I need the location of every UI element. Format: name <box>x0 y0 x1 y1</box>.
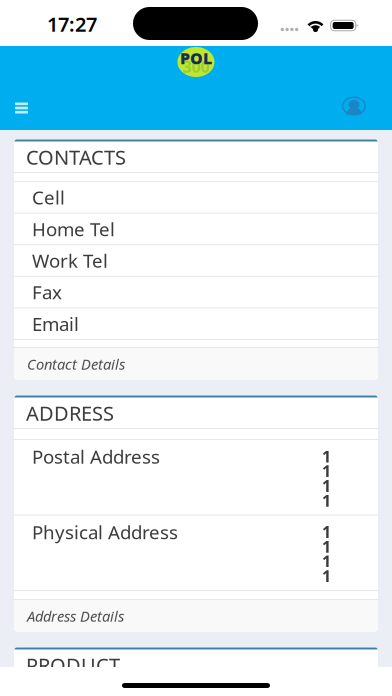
staticText: 17:27 <box>47 11 97 37</box>
staticText: 300 <box>182 56 209 77</box>
button[interactable]: Cell <box>14 182 378 213</box>
button[interactable]: Account <box>335 91 373 121</box>
staticText: 1 <box>322 551 331 572</box>
staticText: 1 <box>322 536 331 557</box>
staticText: 1 <box>322 446 331 467</box>
staticText: 1 <box>322 521 331 542</box>
staticText: POL <box>180 47 212 69</box>
staticText: Fax <box>32 280 62 304</box>
button[interactable]: Fax <box>14 277 378 307</box>
staticText: Contact Details <box>27 354 125 374</box>
button[interactable]: Work Tel <box>14 245 378 276</box>
button[interactable]: Home Tel <box>14 214 378 244</box>
staticText: Email <box>32 311 79 336</box>
staticText: ADDRESS <box>26 400 114 426</box>
button[interactable]: Menu <box>3 93 40 123</box>
staticText: Home Tel <box>32 216 115 241</box>
staticText: 1 <box>322 490 331 511</box>
staticText: CONTACTS <box>26 144 126 170</box>
staticText: 1 <box>322 475 331 496</box>
staticText: Work Tel <box>32 248 108 273</box>
staticText: Cell <box>32 185 65 210</box>
staticText: PRODUCT <box>26 652 120 678</box>
button[interactable]: Email <box>14 308 378 339</box>
staticText: 1 <box>322 460 331 482</box>
staticText: Postal Address <box>32 444 160 469</box>
staticText: Physical Address <box>32 520 178 544</box>
staticText: 1 <box>322 565 331 586</box>
button[interactable]: Postal Address <box>14 440 378 514</box>
button[interactable]: Physical Address <box>14 515 378 590</box>
staticText: Address Details <box>27 606 124 626</box>
